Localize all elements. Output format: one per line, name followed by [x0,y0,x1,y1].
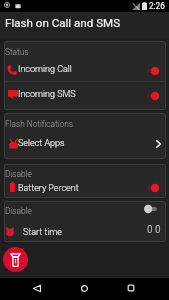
staticText: Incoming Call [18,64,72,75]
staticText: Flash Notifications [5,119,73,129]
staticText: Battery Percent [18,183,79,194]
button[interactable]: Toggle flashlight [3,247,28,272]
staticText: Select Apps [18,138,65,149]
button[interactable]: Back [30,277,44,299]
staticText: Start time [23,227,62,238]
staticText: 0 0 [147,224,161,236]
button[interactable]: Start time [4,224,166,242]
button[interactable]: Incoming Call toggle [144,65,164,77]
button[interactable]: Open app list [153,139,163,149]
staticText: Status [5,47,29,57]
button[interactable]: Incoming SMS [4,86,166,104]
button[interactable]: Recents [124,277,138,299]
button[interactable]: Disable toggle [144,203,164,215]
staticText: Disable [5,169,32,179]
staticText: Disable [5,206,32,216]
staticText: 2:26 [149,1,165,11]
button[interactable]: Home [77,277,91,299]
staticText: Incoming SMS [18,89,76,100]
button[interactable]: Battery Percent [4,180,166,198]
button[interactable]: Select Apps [4,135,166,153]
button[interactable]: Battery Percent toggle [144,182,164,194]
button[interactable]: Incoming SMS toggle [144,90,164,102]
staticText: Flash on Call and SMS [5,16,121,30]
button[interactable]: Incoming Call [4,61,166,79]
